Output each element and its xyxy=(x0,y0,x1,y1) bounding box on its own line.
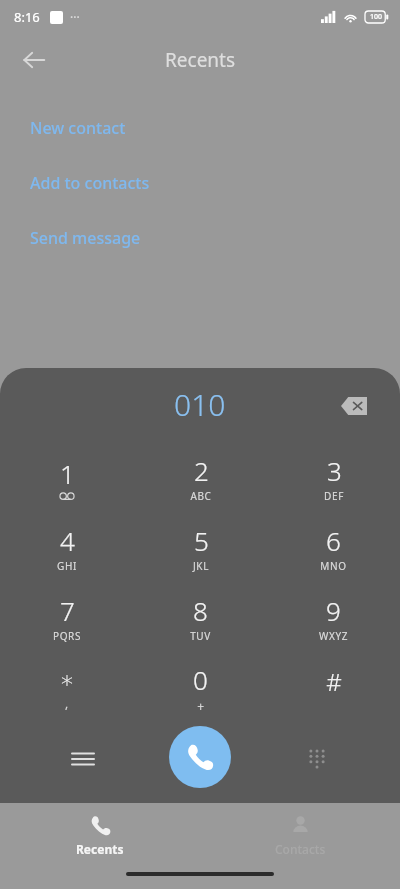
staticText: Add to contacts xyxy=(30,172,150,194)
button[interactable]: Back xyxy=(12,38,56,82)
button[interactable]: 8 xyxy=(134,583,267,653)
staticText: 0 xyxy=(193,662,208,697)
button[interactable]: 4 xyxy=(0,513,134,583)
button[interactable]: 0 xyxy=(134,653,267,723)
button[interactable]: 2 xyxy=(134,443,267,513)
staticText: 7 xyxy=(60,593,75,628)
button[interactable]: Backspace xyxy=(332,384,376,428)
staticText: + xyxy=(197,698,205,714)
staticText: ∗ xyxy=(59,666,75,694)
staticText: Send message xyxy=(30,227,141,249)
staticText: 100 xyxy=(370,12,383,22)
staticText: ··· xyxy=(70,9,80,25)
staticText: JKL xyxy=(193,559,209,573)
staticText: 2 xyxy=(194,453,209,488)
button[interactable]: 5 xyxy=(134,513,267,583)
staticText: Contacts xyxy=(275,841,326,857)
staticText: ABC xyxy=(190,489,212,503)
button[interactable]: Add to contacts xyxy=(30,165,400,201)
staticText: 8 xyxy=(193,593,208,628)
staticText: WXYZ xyxy=(319,629,348,643)
staticText: , xyxy=(65,695,69,711)
button[interactable]: Recents xyxy=(0,803,200,865)
staticText: 1 xyxy=(60,456,75,491)
staticText: 3 xyxy=(327,453,342,488)
staticText: New contact xyxy=(30,117,126,139)
button[interactable]: Dialpad xyxy=(293,735,341,783)
staticText: 6 xyxy=(326,523,341,558)
staticText: Recents xyxy=(76,841,124,857)
staticText: 5 xyxy=(194,523,209,558)
staticText: MNO xyxy=(320,559,347,573)
button[interactable]: 1 xyxy=(0,443,134,513)
staticText: 9 xyxy=(326,593,341,628)
staticText: 8:16 xyxy=(14,8,40,26)
button[interactable]: # xyxy=(267,653,400,723)
staticText: Recents xyxy=(165,47,236,73)
staticText: 4 xyxy=(60,523,75,558)
staticText: 010 xyxy=(174,384,226,425)
button[interactable]: ∗ xyxy=(0,653,134,723)
button[interactable]: 3 xyxy=(267,443,400,513)
staticText: TUV xyxy=(190,629,211,643)
button[interactable]: 6 xyxy=(267,513,400,583)
button[interactable]: 9 xyxy=(267,583,400,653)
staticText: DEF xyxy=(324,489,344,503)
button[interactable]: Call xyxy=(169,726,231,788)
staticText: # xyxy=(326,665,342,698)
button[interactable]: More options xyxy=(59,735,107,783)
staticText: PQRS xyxy=(53,629,81,643)
button[interactable]: New contact xyxy=(30,110,400,146)
button[interactable]: 7 xyxy=(0,583,134,653)
button[interactable]: Send message xyxy=(30,220,400,256)
staticText: GHI xyxy=(57,559,77,573)
